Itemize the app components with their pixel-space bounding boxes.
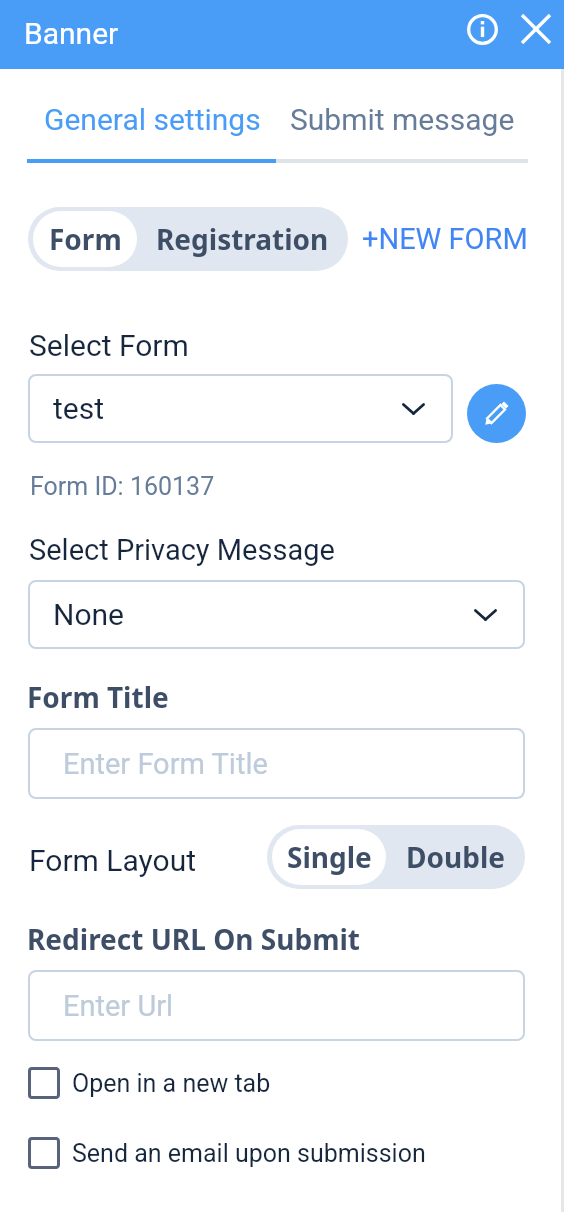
button[interactable]: test <box>28 374 453 443</box>
staticText: Send an email upon submission <box>72 1139 426 1168</box>
staticText: Select Privacy Message <box>29 533 335 567</box>
staticText: Form ID: 160137 <box>30 472 215 501</box>
staticText: Form Layout <box>29 843 196 878</box>
button[interactable]: Enter Form Title <box>28 728 525 799</box>
staticText: General settings <box>44 102 261 137</box>
staticText: Enter Form Title <box>63 747 268 781</box>
button[interactable]: Double <box>386 825 525 889</box>
staticText: None <box>53 597 124 632</box>
staticText: Single <box>287 838 372 876</box>
staticText: Submit message <box>290 102 515 137</box>
button[interactable]: Edit form <box>467 384 526 443</box>
button[interactable]: Submit message <box>277 89 527 149</box>
button[interactable]: General settings <box>27 89 277 149</box>
staticText: +NEW FORM <box>362 222 528 256</box>
staticText: Enter Url <box>63 989 174 1023</box>
button[interactable]: Single <box>272 829 386 885</box>
button[interactable]: +NEW FORM <box>362 222 528 256</box>
button[interactable]: Banner <box>24 16 119 51</box>
staticText: Redirect URL On Submit <box>27 920 360 958</box>
staticText: Registration <box>156 220 329 258</box>
button[interactable]: Registration <box>137 207 348 271</box>
staticText: Form Title <box>27 678 169 716</box>
button[interactable]: Close <box>512 5 560 53</box>
button[interactable]: Info <box>458 5 506 53</box>
button[interactable]: Form <box>33 211 137 267</box>
staticText: Form <box>49 220 122 258</box>
staticText: Select Form <box>29 328 189 363</box>
button[interactable]: Open in a new tab <box>28 1052 508 1114</box>
staticText: test <box>53 391 105 426</box>
button[interactable]: None <box>28 580 525 649</box>
button[interactable]: Send an email upon submission <box>28 1122 508 1184</box>
staticText: Double <box>406 838 505 876</box>
button[interactable]: Enter Url <box>28 970 525 1041</box>
staticText: Open in a new tab <box>72 1069 271 1098</box>
